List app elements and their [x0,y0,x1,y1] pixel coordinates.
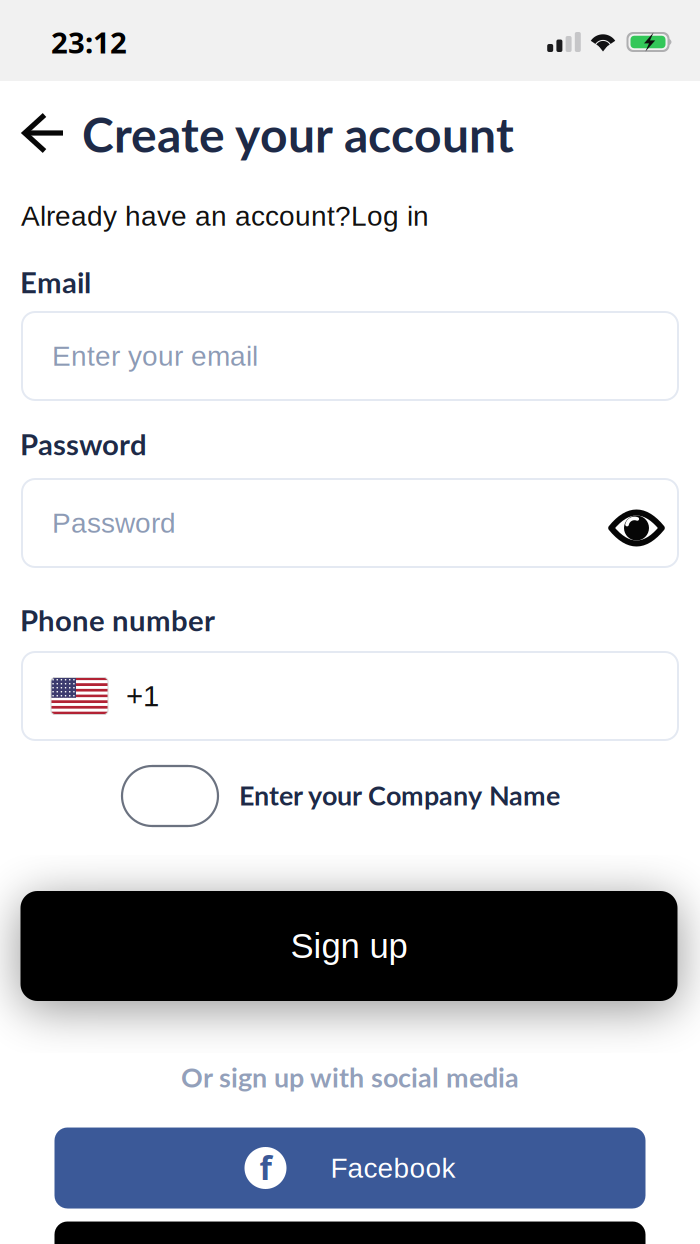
staticText: Create your account [82,105,514,163]
staticText: Or sign up with social media [181,1061,519,1093]
button[interactable]: Log in [351,200,429,232]
staticText: f [259,1146,271,1189]
button[interactable]: Back [10,101,74,165]
button[interactable]: Apple [54,1221,645,1244]
button[interactable]: Enter your Company Name [122,766,218,826]
button[interactable]: Sign up [20,891,677,1001]
button[interactable]: f [54,1127,645,1208]
staticText: Log in [351,200,429,232]
staticText: Sign up [290,927,407,965]
staticText: Email [20,264,91,300]
staticText: Enter your Company Name [239,779,560,811]
staticText: Facebook [330,1152,455,1184]
staticText: Already have an account? [21,200,351,232]
staticText: Enter your email [52,340,258,372]
staticText: 23:12 [51,22,127,62]
staticText: Password [52,507,176,539]
staticText: Phone number [20,602,215,638]
button[interactable]: Show password [595,479,678,567]
staticText: +1 [126,680,159,712]
staticText: Password [20,426,147,462]
